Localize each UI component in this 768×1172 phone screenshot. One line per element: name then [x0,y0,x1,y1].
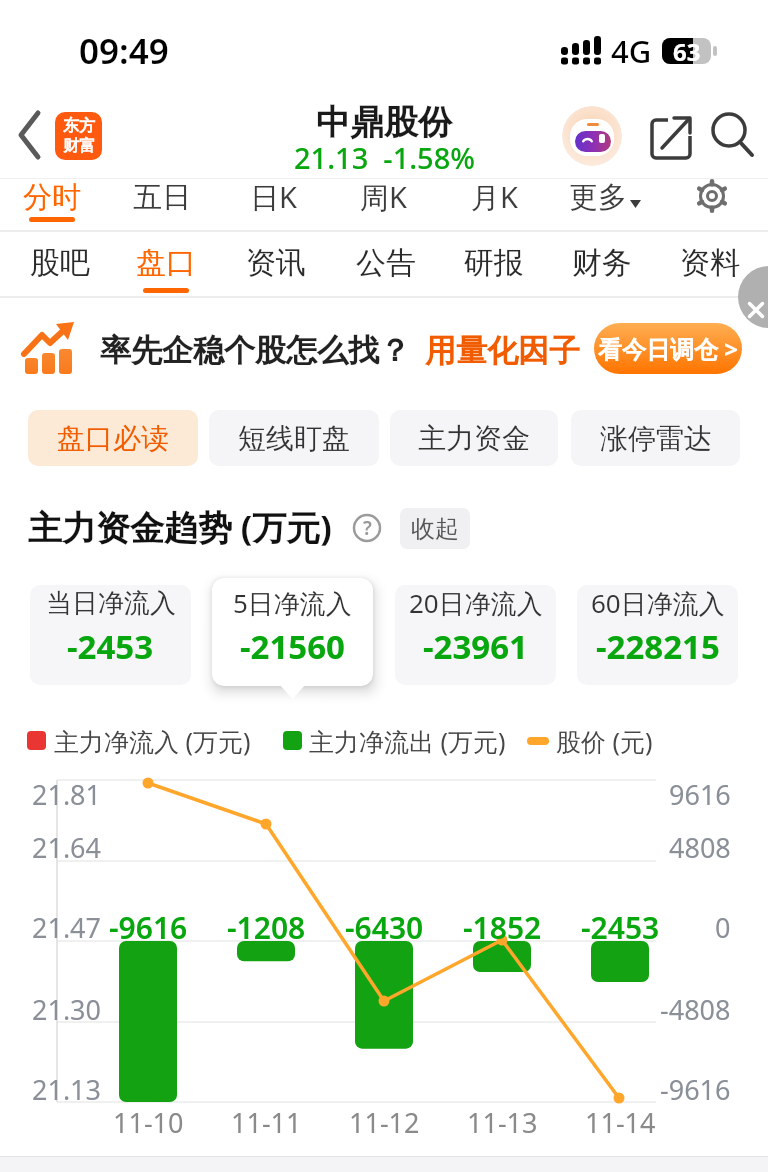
button[interactable]: 当日净流入 [30,585,191,685]
staticText: -9616 [660,1071,731,1108]
staticText: 更多 [569,179,627,216]
button[interactable]: 5日净流入 [212,578,373,686]
staticText: 月K [471,177,518,217]
staticText: -21560 [240,624,345,669]
staticText: 4G [611,30,652,72]
button[interactable]: 更多 [548,171,648,223]
button[interactable]: 盘口必读 [28,410,198,466]
button[interactable]: 周K [333,171,433,223]
staticText: 五日 [133,179,191,216]
staticText: 主力净流出 (万元) [309,724,506,758]
button[interactable]: 日K [223,171,323,223]
button[interactable] [708,110,758,160]
staticText: -1208 [227,907,306,948]
button[interactable]: 涨停雷达 [571,410,740,466]
staticText: 公告 [356,244,416,282]
staticText: 21.64 [32,829,102,866]
staticText: 收起 [411,514,459,544]
staticText: 21.13 -1.58% [294,138,475,177]
button[interactable]: 主力资金 [390,410,558,466]
staticText: 周K [360,177,407,217]
button[interactable]: 月K [444,171,544,223]
button[interactable]: 收起 [400,508,470,549]
button[interactable] [646,112,694,160]
button[interactable]: 研报 [444,234,544,292]
staticText: 主力净流入 (万元) [54,724,251,758]
staticText: 21.30 [32,991,102,1028]
staticText: -23961 [423,624,528,669]
staticText: 涨停雷达 [600,421,712,456]
staticText: 日K [250,177,297,217]
staticText: 东方 [63,116,95,136]
staticText: 资讯 [246,244,306,282]
staticText: -4808 [660,991,731,1028]
button[interactable]: 东方 [55,112,102,160]
staticText: 09:49 [79,27,169,75]
staticText: 4808 [669,829,731,866]
button[interactable]: 财务 [552,234,652,292]
button[interactable]: 五日 [112,171,212,223]
staticText: 11-10 [113,1104,184,1141]
button[interactable]: 资讯 [226,234,326,292]
staticText: 0 [715,909,731,946]
staticText: -6430 [345,907,424,948]
staticText: 主力资金 [418,421,530,456]
staticText: 主力资金趋势 (万元) [28,504,332,550]
staticText: 5日净流入 [233,585,352,621]
staticText: 财务 [572,244,632,282]
staticText: 21.47 [32,909,102,946]
staticText: -228215 [596,624,720,669]
staticText: 9616 [669,776,731,813]
staticText: 看今日调仓 > [598,332,738,365]
button[interactable] [562,106,622,166]
staticText: -2453 [67,624,154,669]
button[interactable]: 公告 [336,234,436,292]
button[interactable]: 看今日调仓 > [594,323,742,374]
staticText: 11-14 [585,1104,656,1141]
button[interactable] [12,108,50,164]
button[interactable]: 资料 [660,234,760,292]
button[interactable]: 分时 [2,171,102,223]
staticText: 股价 (元) [556,724,653,758]
staticText: 11-12 [349,1104,420,1141]
button[interactable]: 短线盯盘 [209,410,379,466]
staticText: 盘口 [136,244,196,282]
staticText: 21.81 [32,776,102,813]
staticText: 分时 [23,179,81,216]
button[interactable]: 盘口 [116,234,216,292]
staticText: 63 [673,35,701,68]
staticText: 短线盯盘 [238,421,350,456]
staticText: 财富 [63,136,95,156]
staticText: 11-11 [231,1104,302,1141]
button[interactable]: 60日净流入 [577,585,738,685]
button[interactable]: 股吧 [10,234,110,292]
staticText: -2453 [581,907,660,948]
staticText: 研报 [464,244,524,282]
staticText: 11-13 [467,1104,538,1141]
staticText: 股吧 [30,244,90,282]
staticText: 21.13 [32,1071,102,1108]
staticText: 中鼎股份 [316,101,452,144]
staticText: 当日净流入 [46,587,176,620]
staticText: ? [363,515,372,541]
staticText: 20日净流入 [409,585,543,621]
staticText: 60日净流入 [591,585,725,621]
staticText: 率先企稳个股怎么找？ [100,331,410,370]
staticText: -1852 [463,907,542,948]
staticText: 资料 [680,244,740,282]
staticText: 盘口必读 [57,421,169,456]
staticText: -9616 [109,907,188,948]
staticText: 用量化因子 [425,331,580,370]
button[interactable]: 20日净流入 [395,585,556,685]
